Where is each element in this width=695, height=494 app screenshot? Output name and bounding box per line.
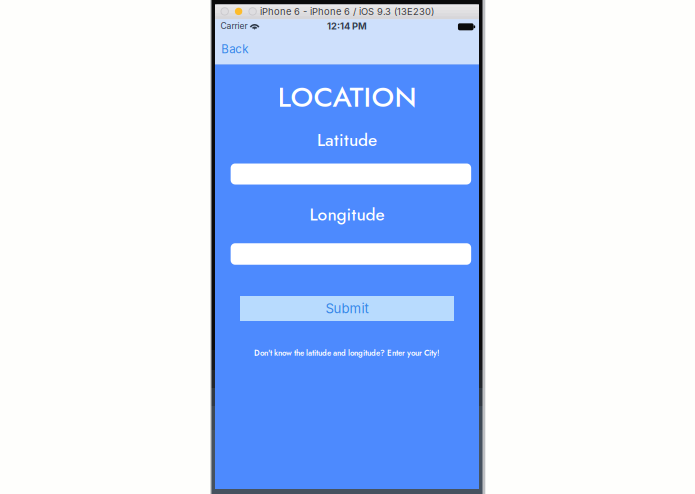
staticText: Back (221, 42, 248, 56)
staticText: Latitude (317, 128, 377, 152)
button[interactable]: Latitude text field (231, 163, 471, 184)
staticText: Carrier (220, 21, 247, 31)
staticText: Longitude (309, 202, 384, 227)
button[interactable]: Longitude text field (231, 243, 471, 265)
staticText: 12:14 PM (327, 20, 367, 32)
staticText: Submit (325, 300, 368, 316)
staticText: iPhone 6 - iPhone 6 / iOS 9.3 (13E230) (260, 6, 434, 17)
button[interactable]: Submit (240, 296, 454, 321)
button[interactable]: Back (221, 35, 261, 63)
staticText: Don't know the latitude and longitude? E… (254, 347, 440, 359)
button[interactable]: Don't know the latitude and longitude? E… (254, 347, 440, 359)
staticText: LOCATION (277, 76, 416, 117)
